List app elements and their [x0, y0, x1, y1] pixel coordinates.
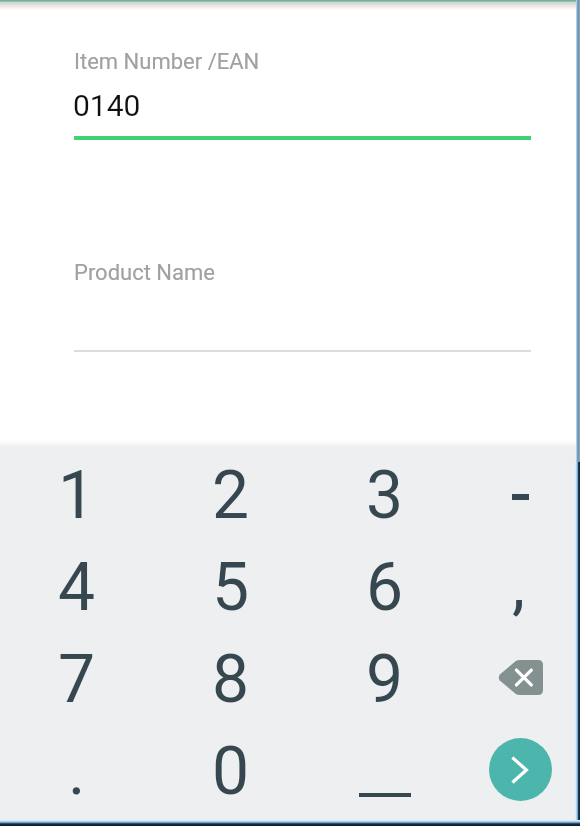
- button[interactable]: Backspace: [462, 633, 580, 725]
- button[interactable]: Enter: [489, 738, 552, 801]
- button[interactable]: 6: [308, 541, 462, 633]
- staticText: ,: [512, 546, 525, 623]
- button[interactable]: 7: [0, 633, 154, 725]
- button[interactable]: Minus: [462, 449, 580, 541]
- staticText: 2: [212, 457, 250, 534]
- staticText: 1: [58, 457, 96, 534]
- button[interactable]: 3: [308, 449, 462, 541]
- button[interactable]: 9: [308, 633, 462, 725]
- button[interactable]: Item Number /EAN: [74, 40, 531, 140]
- staticText: 6: [366, 549, 404, 626]
- staticText: 5: [212, 549, 250, 626]
- staticText: Product Name: [74, 260, 215, 286]
- button[interactable]: 1: [0, 449, 154, 541]
- button[interactable]: 0: [154, 725, 308, 817]
- button[interactable]: 8: [154, 633, 308, 725]
- staticText: 3: [366, 457, 404, 534]
- staticText: 9: [366, 641, 404, 718]
- staticText: 8: [212, 641, 250, 718]
- button[interactable]: Product Name: [74, 252, 531, 352]
- button[interactable]: 5: [154, 541, 308, 633]
- button[interactable]: 2: [154, 449, 308, 541]
- staticText: 0140: [73, 88, 141, 123]
- staticText: Item Number /EAN: [74, 49, 260, 75]
- staticText: 4: [58, 549, 96, 626]
- button[interactable]: 4: [0, 541, 154, 633]
- button[interactable]: ,: [462, 541, 580, 633]
- staticText: .: [68, 733, 86, 810]
- button[interactable]: .: [0, 725, 154, 817]
- button[interactable]: Space: [308, 725, 462, 817]
- staticText: 0: [212, 733, 250, 810]
- staticText: 7: [58, 641, 96, 718]
